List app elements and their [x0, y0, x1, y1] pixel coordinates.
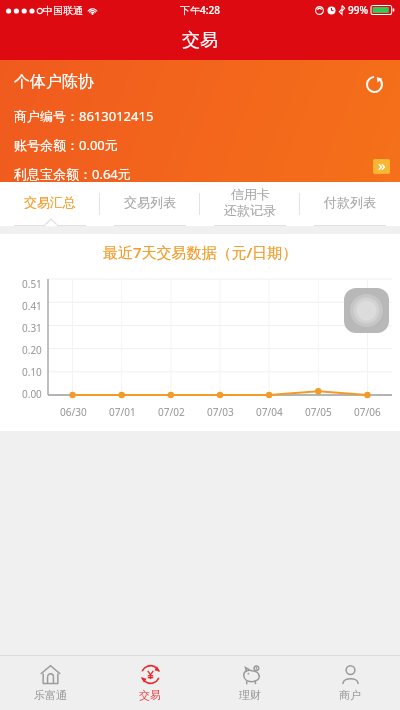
button[interactable]: 辅助触控: [344, 288, 389, 333]
staticText: 利息宝余额：0.64元: [14, 165, 131, 182]
staticText: 0.00: [22, 387, 42, 401]
button[interactable]: 理财: [200, 655, 300, 710]
staticText: 理财: [239, 688, 261, 702]
staticText: 06/30: [60, 405, 87, 419]
staticText: 交易列表: [124, 194, 176, 210]
staticText: 乐富通: [34, 688, 67, 702]
staticText: 交易: [182, 29, 218, 52]
button[interactable]: 商户: [300, 655, 400, 710]
staticText: 07/01: [109, 405, 136, 419]
button[interactable]: 交易汇总: [0, 182, 100, 226]
staticText: 交易: [139, 688, 161, 702]
staticText: 商户: [339, 688, 361, 702]
button[interactable]: 交易: [100, 655, 200, 710]
staticText: 07/04: [256, 405, 283, 419]
staticText: 下午4:28: [180, 3, 220, 17]
staticText: 0.41: [22, 299, 42, 313]
staticText: 账号余额：0.00元: [14, 136, 118, 154]
staticText: 99%: [348, 3, 368, 17]
button[interactable]: 信用卡: [200, 182, 300, 226]
button[interactable]: 乐富通: [0, 655, 100, 710]
staticText: 0.51: [22, 277, 42, 291]
button[interactable]: 刷新: [360, 70, 388, 98]
button[interactable]: 交易列表: [100, 182, 200, 226]
staticText: 付款列表: [324, 194, 376, 210]
staticText: 交易汇总: [24, 194, 76, 210]
staticText: 07/05: [305, 405, 332, 419]
staticText: 还款记录: [224, 202, 276, 218]
staticText: 0.31: [22, 321, 42, 335]
staticText: 最近7天交易数据（元/日期）: [103, 242, 298, 262]
staticText: 0.20: [22, 343, 42, 357]
staticText: 个体户陈协: [14, 72, 94, 92]
button[interactable]: 付款列表: [300, 182, 400, 226]
staticText: 07/03: [207, 405, 234, 419]
staticText: 信用卡: [231, 186, 270, 202]
staticText: 商户编号：8613012415: [14, 107, 154, 125]
button[interactable]: 更多: [373, 159, 390, 174]
staticText: 07/02: [158, 405, 185, 419]
staticText: 0.10: [22, 365, 42, 379]
staticText: 07/06: [354, 405, 381, 419]
staticText: 中国联通: [43, 4, 83, 17]
